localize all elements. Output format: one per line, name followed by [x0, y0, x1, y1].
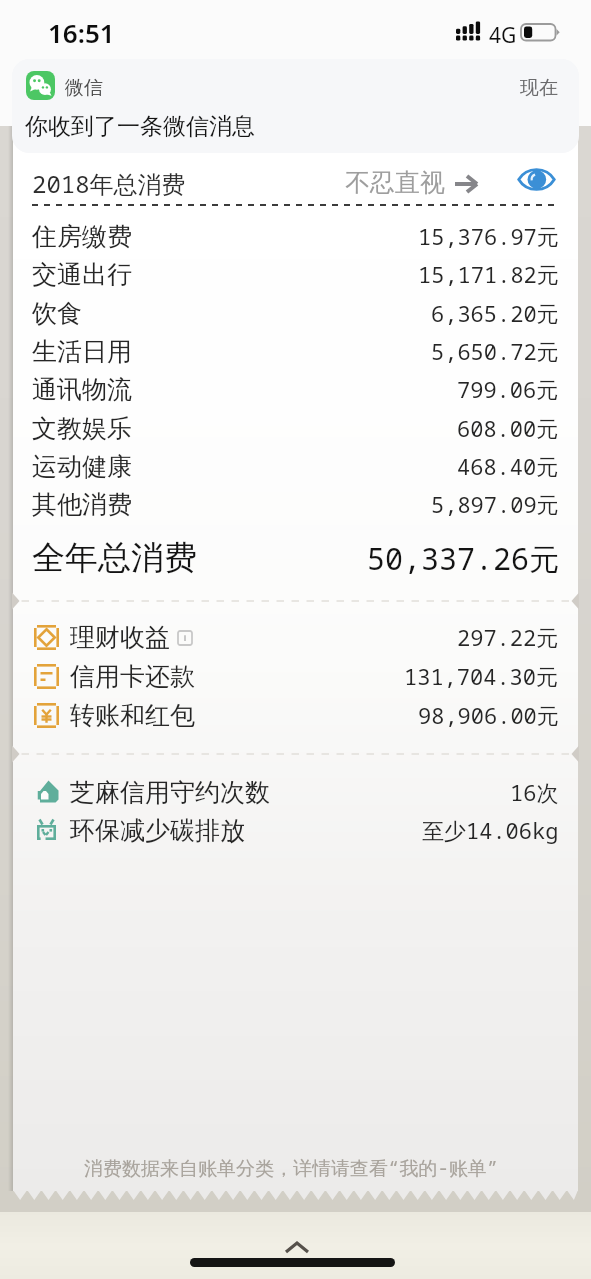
staticText: 15,376.97元 — [418, 221, 559, 251]
staticText: 799.06元 — [457, 374, 559, 404]
staticText: 297.22元 — [457, 622, 559, 652]
staticText: 2018年总消费 — [32, 167, 186, 200]
button[interactable]: 生活日用 — [13, 332, 578, 370]
staticText: 信用卡还款 — [70, 661, 195, 692]
button[interactable]: 全年总消费 — [13, 536, 578, 580]
staticText: 全年总消费 — [32, 537, 197, 579]
staticText: 住房缴费 — [32, 221, 132, 252]
button[interactable]: 其他消费 — [13, 485, 578, 523]
staticText: 理财收益 — [70, 622, 170, 653]
staticText: 通讯物流 — [32, 374, 132, 405]
staticText: 其他消费 — [32, 489, 132, 520]
staticText: 现在 — [520, 76, 558, 100]
button[interactable]: 信用卡还款 — [13, 657, 578, 695]
button[interactable]: 通讯物流 — [13, 370, 578, 408]
staticText: 16:51 — [48, 15, 115, 50]
staticText: 交通出行 — [32, 259, 132, 290]
button[interactable]: 环保减少碳排放 — [13, 811, 578, 849]
button[interactable]: 理财收益 — [13, 618, 578, 656]
staticText: 15,171.82元 — [418, 259, 559, 289]
staticText: 50,337.26元 — [367, 538, 559, 579]
button[interactable]: 运动健康 — [13, 447, 578, 485]
staticText: 6,365.20元 — [431, 298, 559, 328]
staticText: 文教娱乐 — [32, 413, 132, 444]
staticText: 你收到了一条微信消息 — [25, 112, 255, 141]
staticText: 98,906.00元 — [418, 700, 559, 730]
button[interactable]: 转账和红包 — [13, 696, 578, 734]
staticText: 消费数据来自账单分类，详情请查看“我的-账单” — [84, 1155, 499, 1181]
staticText: 468.40元 — [457, 451, 559, 481]
button[interactable]: 饮食 — [13, 294, 578, 332]
staticText: 131,704.30元 — [404, 661, 559, 691]
staticText: 5,897.09元 — [431, 489, 559, 519]
button[interactable]: 文教娱乐 — [13, 409, 578, 447]
staticText: 芝麻信用守约次数 — [70, 777, 270, 808]
staticText: 生活日用 — [32, 336, 132, 367]
staticText: 5,650.72元 — [431, 336, 559, 366]
button[interactable]: 微信 — [12, 59, 579, 153]
staticText: 不忍直视 — [345, 167, 445, 198]
button[interactable]: 芝麻信用守约次数 — [13, 773, 578, 811]
button[interactable]: 交通出行 — [13, 255, 578, 293]
button[interactable]: 住房缴费 — [13, 217, 578, 255]
staticText: 环保减少碳排放 — [70, 815, 245, 846]
staticText: 微信 — [65, 76, 103, 100]
button[interactable]: 不忍直视 — [345, 167, 477, 198]
staticText: 转账和红包 — [70, 700, 195, 731]
staticText: 运动健康 — [32, 451, 132, 482]
button[interactable]: Hide amounts — [518, 166, 555, 193]
staticText: 饮食 — [32, 298, 82, 329]
staticText: 608.00元 — [457, 413, 559, 443]
staticText: 至少14.06kg — [422, 815, 559, 845]
staticText: 16次 — [510, 777, 559, 807]
staticText: 4G — [489, 21, 517, 50]
